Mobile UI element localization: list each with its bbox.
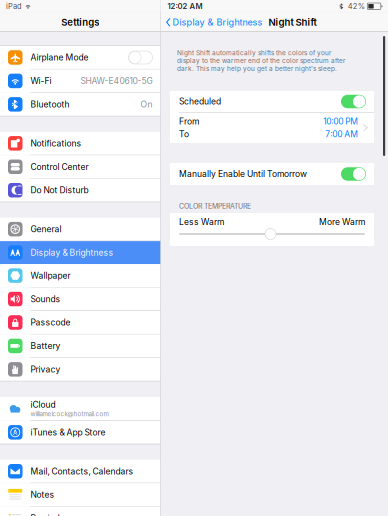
staticText: On	[140, 99, 152, 109]
staticText: 42%	[348, 2, 365, 11]
staticText: Sounds	[30, 294, 60, 304]
staticText: Scheduled	[179, 96, 221, 107]
button[interactable]: Battery	[0, 334, 160, 357]
button[interactable]: Manually Enable Until Tomorrow	[170, 163, 374, 185]
staticText: Control Center	[30, 162, 88, 172]
staticText: Reminders	[30, 513, 72, 516]
button[interactable]: iTunes & App Store	[0, 421, 160, 444]
staticText: iPad	[6, 2, 22, 11]
button[interactable]: Display & Brightness	[0, 241, 160, 264]
staticText: Airplane Mode	[30, 52, 88, 63]
button[interactable]: Wallpaper	[0, 264, 160, 287]
staticText: 10:00 PM	[323, 116, 358, 126]
staticText: General	[30, 224, 61, 234]
button[interactable]: Privacy	[0, 358, 160, 381]
button[interactable]: From	[170, 112, 374, 143]
staticText: 7:00 AM	[325, 129, 358, 139]
staticText: From	[179, 116, 199, 126]
button[interactable]: Control Center	[0, 155, 160, 178]
staticText: williamelcock@hotmail.com	[30, 410, 108, 418]
staticText: Manually Enable Until Tomorrow	[179, 169, 307, 179]
staticText: Privacy	[30, 364, 60, 374]
button[interactable]: Sounds	[0, 287, 160, 310]
staticText: Wallpaper	[30, 270, 70, 281]
staticText: Mail, Contacts, Calendars	[30, 466, 133, 476]
button[interactable]: Notifications	[0, 132, 160, 155]
staticText: Passcode	[30, 317, 70, 328]
staticText: iCloud	[30, 399, 55, 410]
staticText: iTunes & App Store	[30, 427, 105, 437]
button[interactable]: Reminders	[0, 507, 160, 516]
button[interactable]: General	[0, 218, 160, 241]
staticText: Battery	[30, 341, 60, 351]
staticText: 12:02 AM	[167, 2, 202, 11]
button[interactable]: Passcode	[0, 311, 160, 334]
button[interactable]: Do Not Disturb	[0, 179, 160, 202]
button[interactable]: Mail, Contacts, Calendars	[0, 460, 160, 483]
button[interactable]: Airplane Mode	[0, 46, 160, 69]
staticText: SHAW-E40610-5G	[80, 76, 152, 86]
staticText: Settings	[61, 16, 99, 28]
staticText: Night Shift	[268, 16, 316, 28]
button[interactable]: Wi-Fi	[0, 69, 160, 92]
staticText: Notifications	[30, 138, 81, 148]
button[interactable]: Notes	[0, 483, 160, 506]
staticText: Do Not Disturb	[30, 185, 88, 195]
staticText: To	[179, 129, 189, 139]
staticText: Wi-Fi	[30, 76, 51, 86]
button[interactable]: Bluetooth	[0, 93, 160, 116]
button[interactable]: iCloud	[0, 397, 160, 420]
staticText: COLOR TEMPERATURE	[179, 202, 251, 210]
staticText: Night Shift automatically shifts the col…	[177, 49, 345, 72]
staticText: Bluetooth	[30, 99, 69, 109]
staticText: Notes	[30, 490, 54, 500]
button[interactable]: Display & Brightness	[161, 12, 264, 32]
staticText: More Warm	[319, 217, 365, 227]
staticText: Display & Brightness	[30, 247, 113, 258]
staticText: Less Warm	[179, 217, 224, 227]
staticText: Display & Brightness	[172, 17, 262, 28]
